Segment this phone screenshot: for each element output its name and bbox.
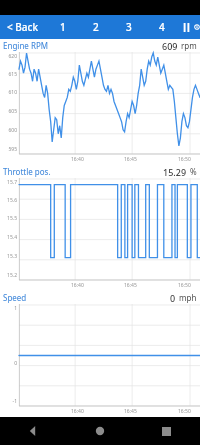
staticText: 16:45 (124, 156, 137, 163)
button[interactable]: < Back (0, 15, 46, 39)
button[interactable]: 1 (46, 15, 79, 39)
staticText: 15.7 (7, 179, 17, 186)
staticText: Speed (3, 292, 27, 303)
staticText: 16:40 (71, 282, 84, 289)
staticText: 16:50 (178, 408, 191, 415)
staticText: 15.29 (163, 166, 187, 178)
button[interactable]: Home (66, 417, 133, 445)
staticText: 16:45 (124, 282, 137, 289)
button[interactable]: Throttle pos. (0, 165, 200, 291)
staticText: rpm (181, 40, 197, 51)
staticText: 15.3 (7, 253, 17, 260)
staticText: 620 (8, 53, 17, 60)
button[interactable]: Pause (178, 15, 194, 39)
staticText: 0 (170, 292, 176, 304)
staticText: 15.5 (7, 215, 17, 222)
staticText: 2 (93, 20, 99, 34)
button[interactable]: Back (0, 417, 66, 445)
button[interactable]: Recents (133, 417, 200, 445)
staticText: 15.4 (7, 234, 17, 241)
staticText: 615 (8, 71, 17, 78)
staticText: 4 (159, 20, 165, 34)
button[interactable]: Info (194, 15, 200, 39)
staticText: 15.2 (7, 272, 17, 279)
staticText: 16:50 (178, 156, 191, 163)
button[interactable]: 3 (112, 15, 145, 39)
staticText: 15.6 (7, 197, 17, 204)
staticText: 1 (60, 20, 66, 34)
button[interactable]: 4 (145, 15, 178, 39)
staticText: < Back (7, 20, 39, 34)
staticText: 609 (162, 40, 178, 52)
staticText: 16:40 (71, 408, 84, 415)
staticText: 605 (8, 108, 17, 115)
staticText: 610 (8, 89, 17, 96)
staticText: -1 (12, 398, 17, 405)
button[interactable]: Speed (0, 291, 200, 417)
staticText: mph (179, 292, 197, 303)
button[interactable]: Engine RPM (0, 39, 200, 165)
button[interactable]: 2 (79, 15, 112, 39)
staticText: 1 (14, 305, 17, 312)
staticText: 0 (14, 360, 17, 367)
staticText: 16:40 (71, 156, 84, 163)
staticText: 600 (8, 127, 17, 134)
staticText: % (190, 166, 197, 177)
staticText: 16:50 (178, 282, 191, 289)
staticText: 595 (8, 146, 17, 153)
staticText: 3 (126, 20, 132, 34)
staticText: Engine RPM (3, 40, 48, 51)
staticText: Throttle pos. (3, 166, 51, 177)
staticText: 16:45 (124, 408, 137, 415)
